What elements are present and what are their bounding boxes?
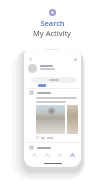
button[interactable]: [38, 84, 46, 87]
button[interactable]: Explore: [43, 151, 51, 159]
button[interactable]: Home: [30, 151, 38, 159]
button[interactable]: [31, 77, 76, 83]
button[interactable]: Notifications: [55, 151, 63, 159]
button[interactable]: Back: [28, 57, 33, 62]
staticText: Search: [40, 18, 65, 28]
button[interactable]: Account: [72, 56, 78, 62]
button[interactable]: Profile: [68, 151, 76, 159]
staticText: My Activity: [33, 28, 71, 38]
